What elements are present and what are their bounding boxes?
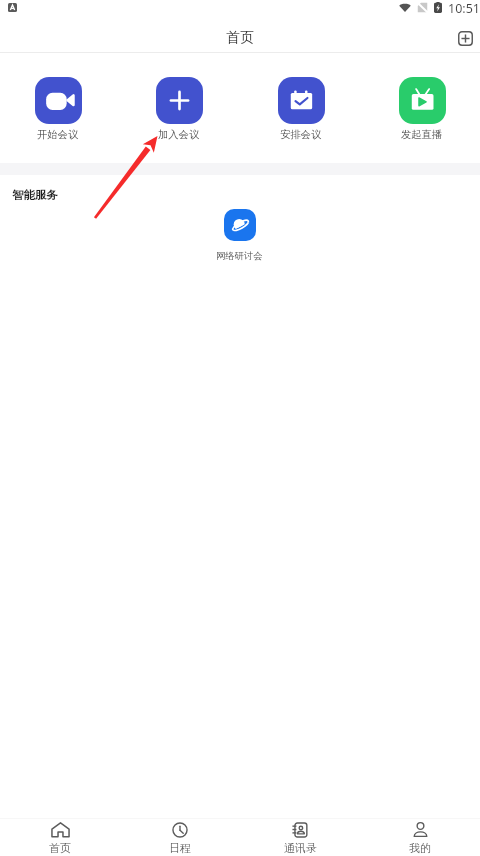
staticText: 我的: [409, 841, 431, 855]
button[interactable]: 通讯录: [240, 820, 360, 855]
button[interactable]: 开始会议: [8, 77, 108, 141]
button[interactable]: 安排会议: [251, 77, 351, 141]
staticText: 通讯录: [284, 841, 317, 855]
button[interactable]: 加入会议: [129, 77, 229, 141]
button[interactable]: 发起直播: [372, 77, 472, 141]
staticText: 日程: [169, 841, 191, 855]
button[interactable]: 日程: [120, 820, 240, 855]
button[interactable]: Add: [452, 25, 478, 51]
staticText: 网络研讨会: [216, 250, 263, 262]
staticText: 安排会议: [280, 128, 322, 141]
staticText: 首页: [226, 29, 254, 47]
button[interactable]: 首页: [0, 820, 120, 855]
button[interactable]: 我的: [360, 820, 480, 855]
button[interactable]: 网络研讨会: [216, 209, 263, 262]
staticText: 开始会议: [37, 128, 79, 141]
staticText: 首页: [49, 841, 71, 855]
staticText: 加入会议: [158, 128, 200, 141]
staticText: 10:51: [448, 0, 480, 17]
staticText: 发起直播: [401, 128, 443, 141]
staticText: 智能服务: [12, 188, 58, 202]
